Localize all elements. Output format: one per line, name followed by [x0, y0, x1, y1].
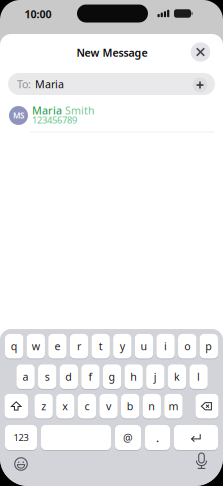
button[interactable]: m	[164, 394, 183, 418]
button[interactable]: Shift	[4, 394, 28, 418]
button[interactable]: @	[115, 425, 141, 450]
button[interactable]: j	[146, 364, 164, 389]
staticText: s	[45, 370, 50, 384]
button[interactable]: .	[145, 425, 170, 450]
staticText: f	[88, 370, 92, 384]
button[interactable]: v	[99, 394, 118, 418]
staticText: m	[168, 399, 178, 413]
button[interactable]: k	[168, 364, 186, 389]
button[interactable]: d	[60, 364, 78, 389]
button[interactable]: c	[78, 394, 96, 418]
button[interactable]: MS	[0, 98, 223, 132]
staticText: New Message	[76, 45, 147, 60]
button[interactable]: f	[81, 364, 100, 389]
button[interactable]: e	[48, 334, 67, 358]
staticText: z	[41, 399, 46, 413]
staticText: 10:00	[24, 7, 51, 21]
staticText: r	[77, 339, 81, 353]
button[interactable]: r	[70, 334, 88, 358]
staticText: a	[22, 370, 28, 384]
button[interactable]: z	[34, 394, 53, 418]
button[interactable]: y	[113, 334, 131, 358]
staticText: Maria	[35, 77, 64, 91]
staticText: y	[120, 339, 125, 353]
staticText: MS	[13, 110, 24, 121]
button[interactable]: 123	[5, 425, 37, 450]
button[interactable]: q	[5, 334, 23, 358]
staticText: x	[62, 399, 68, 413]
staticText: h	[130, 370, 137, 384]
staticText: @	[123, 430, 133, 445]
button[interactable]	[41, 425, 111, 450]
button[interactable]: s	[38, 364, 56, 389]
staticText: o	[184, 339, 190, 353]
staticText: d	[65, 370, 72, 384]
staticText: g	[109, 370, 116, 384]
staticText: l	[197, 370, 200, 384]
button[interactable]: Delete	[195, 394, 218, 418]
staticText: p	[205, 339, 212, 353]
staticText: b	[127, 399, 134, 413]
staticText: n	[148, 399, 155, 413]
button[interactable]: l	[189, 364, 208, 389]
staticText: e	[54, 339, 60, 353]
staticText: u	[140, 339, 147, 353]
staticText: q	[11, 339, 18, 353]
staticText: w	[32, 339, 40, 353]
button[interactable]: h	[124, 364, 143, 389]
button[interactable]: p	[200, 334, 218, 358]
button[interactable]: x	[56, 394, 74, 418]
staticText: 123456789	[32, 114, 77, 126]
button[interactable]: u	[135, 334, 153, 358]
staticText: c	[84, 399, 89, 413]
button[interactable]: b	[121, 394, 139, 418]
staticText: To:	[17, 77, 31, 91]
button[interactable]: n	[143, 394, 161, 418]
button[interactable]: Emoji	[13, 456, 29, 472]
button[interactable]: g	[103, 364, 121, 389]
staticText: j	[154, 370, 157, 384]
button[interactable]: Add Contact	[192, 77, 207, 92]
button[interactable]: t	[91, 334, 110, 358]
button[interactable]: a	[16, 364, 35, 389]
staticText: 123	[13, 431, 28, 444]
button[interactable]: Dictation	[192, 452, 210, 470]
staticText: k	[174, 370, 180, 384]
button[interactable]: Close	[191, 42, 210, 62]
staticText: i	[164, 339, 167, 353]
staticText: Smith	[62, 103, 95, 117]
button[interactable]: o	[178, 334, 196, 358]
button[interactable]: Return	[174, 425, 218, 450]
button[interactable]: w	[27, 334, 45, 358]
staticText: Maria	[32, 103, 62, 117]
button[interactable]: i	[156, 334, 175, 358]
staticText: .	[156, 429, 159, 445]
staticText: t	[99, 339, 103, 353]
staticText: v	[106, 399, 111, 413]
